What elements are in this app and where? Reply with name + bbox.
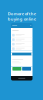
button[interactable] [12,67,21,71]
button[interactable] [22,67,31,71]
staticText: Do more of the buying online [7,11,35,22]
